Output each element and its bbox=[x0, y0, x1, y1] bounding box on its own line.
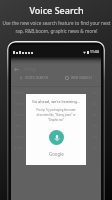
staticText: Google bbox=[49, 151, 64, 157]
button[interactable]: Pants bbox=[14, 109, 98, 120]
button[interactable]: Shirts bbox=[14, 87, 98, 98]
staticText: Go ahead, we're listening... bbox=[32, 99, 80, 104]
staticText: VOICE SEARCH bbox=[25, 75, 49, 80]
button[interactable]: Start voice search bbox=[49, 130, 64, 145]
button[interactable]: Hats bbox=[14, 120, 98, 131]
staticText: Voice Search bbox=[29, 4, 84, 16]
staticText: Use the new voice search feature to find… bbox=[2, 20, 111, 35]
staticText: Pro tip: Try just saying the name of an … bbox=[36, 108, 76, 122]
button[interactable]: Shoes bbox=[14, 98, 98, 109]
staticText: 11:34 bbox=[90, 49, 99, 54]
other: Back bbox=[14, 67, 19, 72]
button[interactable]: WEB SEARCH bbox=[56, 75, 101, 80]
button[interactable]: Coats bbox=[14, 131, 98, 142]
button[interactable]: VOICE SEARCH bbox=[11, 75, 56, 80]
staticText: WEB SEARCH bbox=[71, 75, 92, 80]
button[interactable]: Bags bbox=[14, 142, 98, 153]
